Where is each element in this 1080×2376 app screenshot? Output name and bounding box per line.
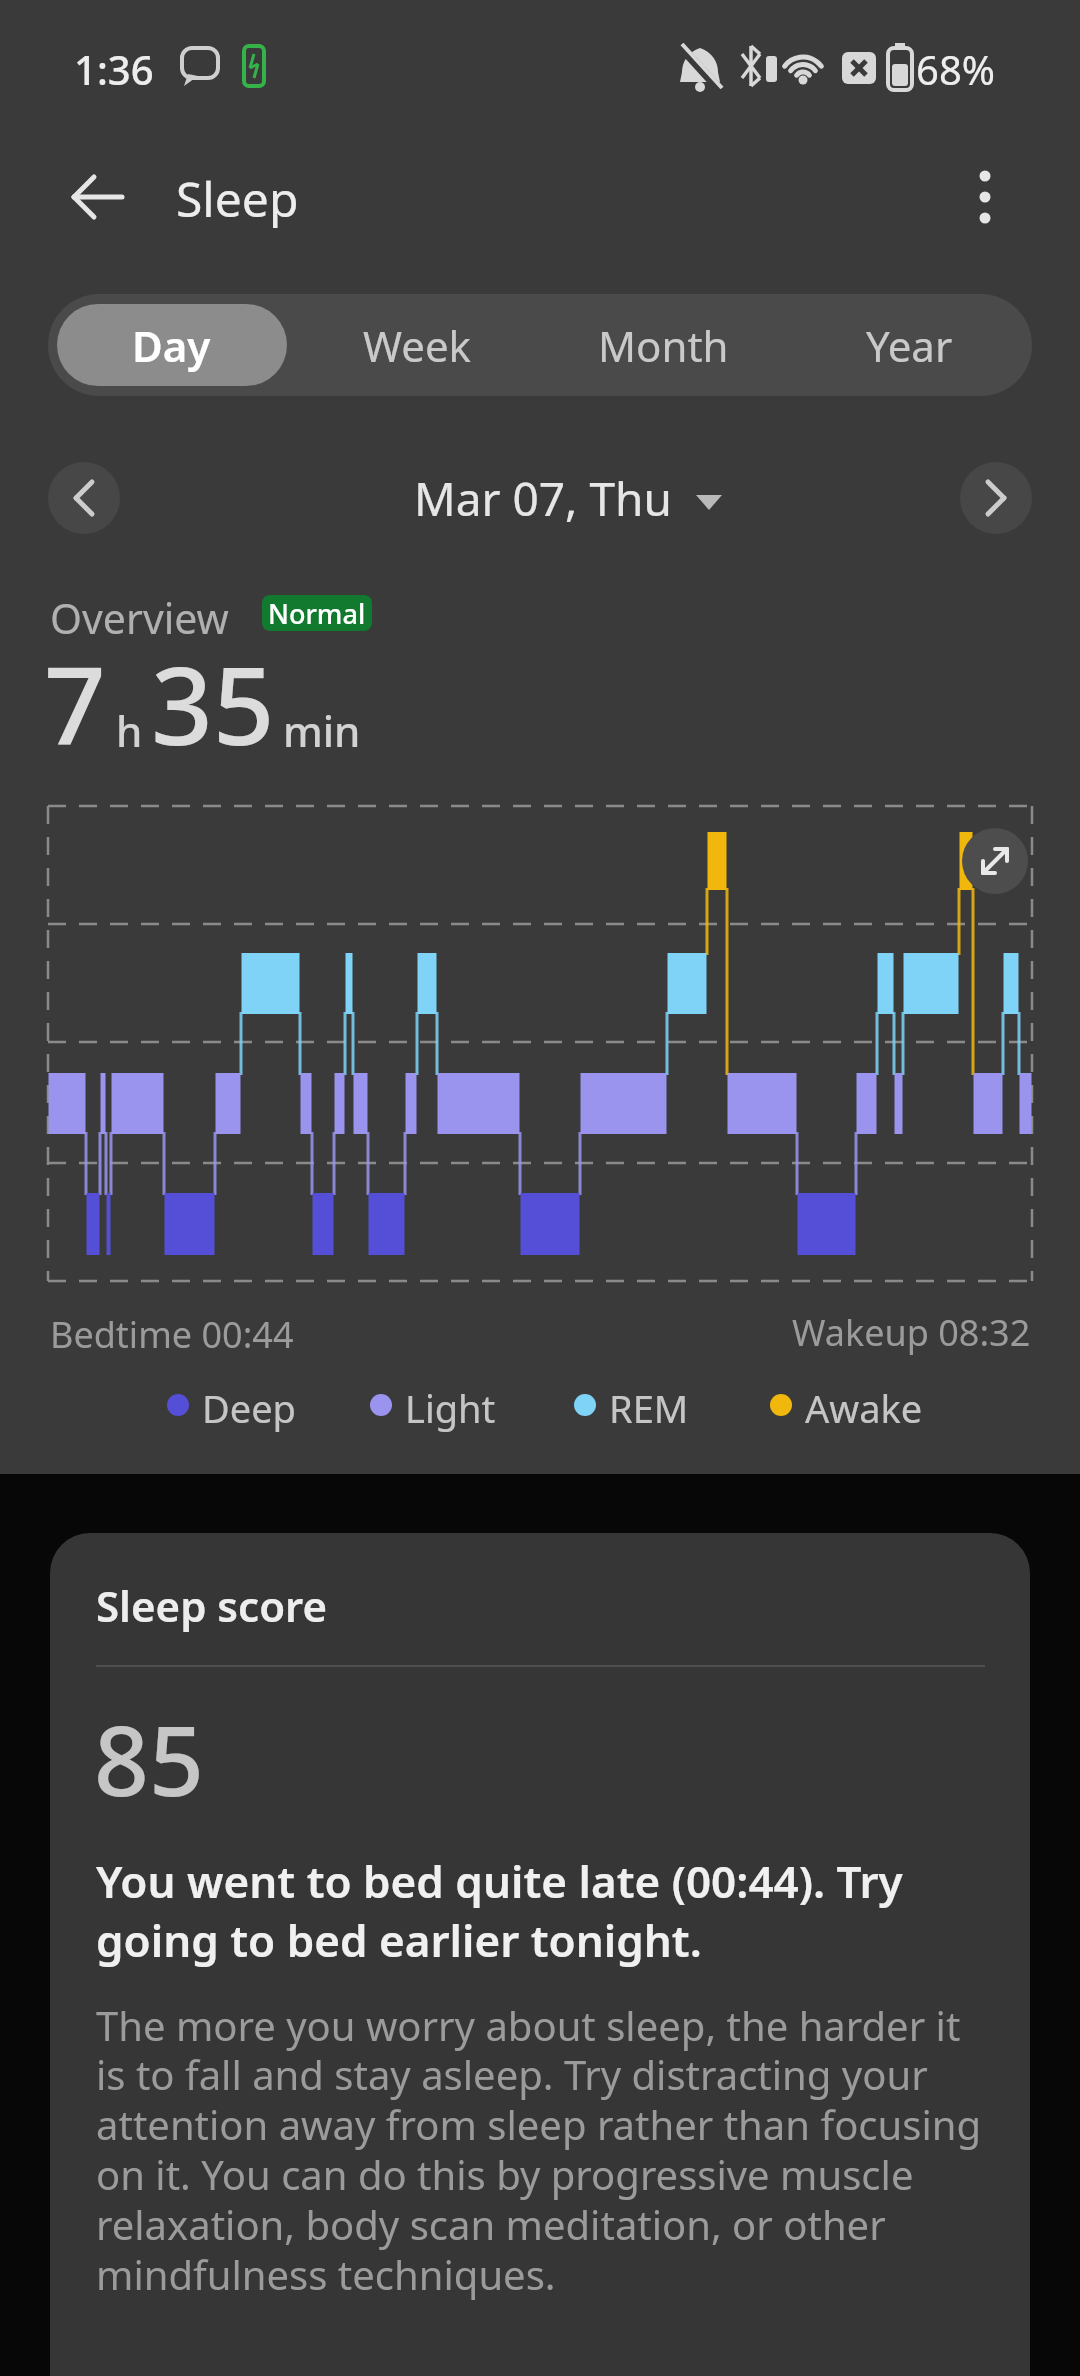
staticText: The more you worry about sleep, the hard… (96, 1998, 982, 2302)
staticText: h (116, 702, 143, 759)
staticText: Overview (50, 590, 229, 646)
staticText: Deep (202, 1382, 296, 1434)
staticText: 35 (151, 630, 275, 777)
staticText: Light (405, 1382, 496, 1434)
button[interactable] (950, 160, 1020, 234)
button[interactable] (48, 462, 120, 534)
button[interactable]: Year (786, 294, 1032, 396)
staticText: Mar 07, Thu (414, 467, 672, 530)
staticText: 85 (94, 1693, 204, 1824)
button[interactable] (960, 462, 1032, 534)
button[interactable]: Day (48, 294, 294, 396)
staticText: Year (866, 317, 953, 374)
staticText: Awake (805, 1382, 923, 1434)
button[interactable]: Week (294, 294, 540, 396)
button[interactable]: Mar 07, Thu (414, 467, 698, 530)
staticText: Wakeup 08:32 (792, 1308, 1031, 1357)
staticText: Month (598, 317, 729, 374)
button[interactable] (962, 828, 1028, 894)
staticText: Sleep (176, 166, 299, 231)
button[interactable] (60, 162, 136, 232)
staticText: Day (132, 317, 211, 374)
staticText: 68% (916, 42, 995, 96)
staticText: REM (609, 1382, 689, 1434)
staticText: Bedtime 00:44 (50, 1310, 294, 1359)
button[interactable]: Month (540, 294, 786, 396)
staticText: You went to bed quite late (00:44). Try … (96, 1851, 903, 1969)
staticText: Sleep score (96, 1577, 328, 1634)
staticText: Normal (268, 595, 366, 631)
staticText: 7 (44, 630, 106, 777)
staticText: 1:36 (74, 42, 154, 96)
staticText: Week (363, 317, 472, 374)
staticText: min (283, 702, 361, 759)
